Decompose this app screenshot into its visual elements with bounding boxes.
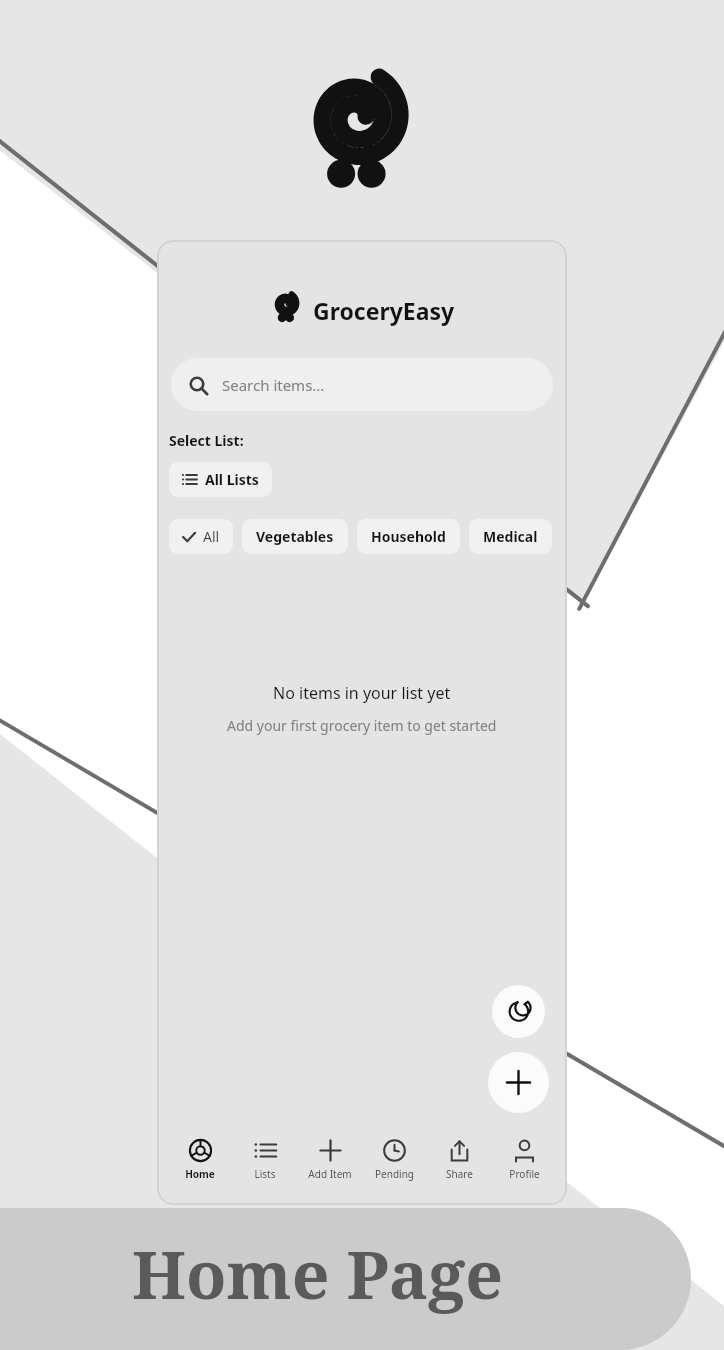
- button[interactable]: Add Item: [299, 1135, 361, 1185]
- staticText: All Lists: [205, 470, 259, 489]
- staticText: Pending: [375, 1167, 414, 1181]
- staticText: Household: [371, 527, 446, 546]
- button[interactable]: Profile: [493, 1135, 555, 1185]
- staticText: Vegetables: [256, 527, 334, 546]
- staticText: Profile: [509, 1167, 540, 1181]
- button[interactable]: Vegetables: [242, 519, 348, 554]
- staticText: Lists: [254, 1167, 276, 1181]
- button[interactable]: Pending: [363, 1135, 425, 1185]
- button[interactable]: Home: [169, 1135, 231, 1185]
- staticText: Home: [185, 1167, 215, 1181]
- button[interactable]: Add item: [488, 1052, 549, 1113]
- staticText: Add your first grocery item to get start…: [227, 716, 497, 735]
- staticText: GroceryEasy: [313, 295, 455, 326]
- staticText: All: [203, 527, 220, 546]
- button[interactable]: All: [169, 519, 233, 554]
- staticText: Select List:: [169, 431, 244, 450]
- staticText: No items in your list yet: [273, 682, 451, 704]
- button[interactable]: Toggle dark mode: [492, 985, 545, 1038]
- button[interactable]: All Lists: [169, 462, 272, 497]
- button[interactable]: Search items...: [171, 358, 553, 411]
- button[interactable]: Share: [428, 1135, 490, 1185]
- staticText: Share: [446, 1167, 473, 1181]
- staticText: Search items...: [222, 375, 325, 395]
- button[interactable]: Lists: [234, 1135, 296, 1185]
- staticText: Medical: [483, 527, 538, 546]
- staticText: Add Item: [308, 1167, 352, 1181]
- button[interactable]: Medical: [469, 519, 552, 554]
- button[interactable]: Household: [357, 519, 460, 554]
- staticText: Home Page: [132, 1228, 503, 1318]
